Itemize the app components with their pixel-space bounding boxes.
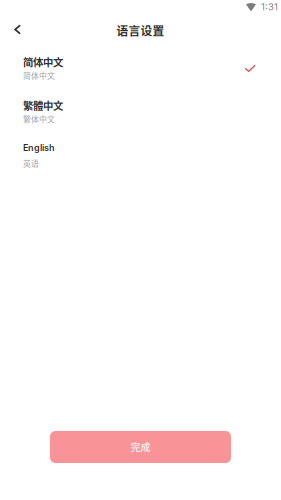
staticText: 1:31: [261, 1, 278, 12]
button[interactable]: Back: [0, 20, 33, 42]
staticText: English: [23, 142, 55, 153]
button[interactable]: 简体中文: [0, 46, 281, 89]
staticText: 简体中文: [23, 70, 55, 81]
staticText: 繁體中文: [23, 98, 63, 113]
staticText: 繁体中文: [23, 113, 55, 124]
staticText: 语言设置: [116, 22, 164, 39]
staticText: 英语: [23, 158, 39, 169]
button[interactable]: 完成: [50, 431, 231, 463]
staticText: 完成: [130, 440, 150, 454]
button[interactable]: English: [0, 133, 281, 176]
button[interactable]: 繁體中文: [0, 89, 281, 133]
staticText: 简体中文: [23, 54, 63, 69]
